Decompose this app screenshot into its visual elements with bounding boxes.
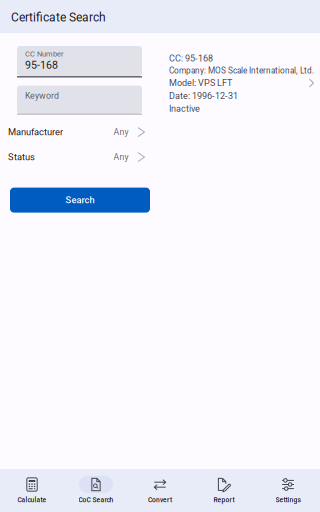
staticText: Report	[213, 496, 234, 504]
staticText: CC: 95-168	[169, 53, 213, 64]
staticText: 95-168	[25, 59, 58, 71]
button[interactable]: Manufacturer	[0, 120, 148, 145]
button[interactable]: Settings	[256, 469, 320, 512]
staticText: Keyword	[25, 91, 59, 101]
button[interactable]: CC: 95-168	[160, 33, 320, 153]
button[interactable]: Report	[192, 469, 256, 512]
staticText: Search	[65, 195, 94, 205]
staticText: Manufacturer	[8, 127, 63, 137]
staticText: Calculate	[17, 496, 46, 504]
staticText: Inactive	[169, 103, 200, 114]
staticText: Convert	[148, 496, 172, 504]
button[interactable]: CoC Search	[64, 469, 128, 512]
button[interactable]: Search	[10, 188, 150, 213]
staticText: Status	[8, 152, 35, 162]
staticText: Any	[113, 152, 128, 162]
button[interactable]: Convert	[128, 469, 192, 512]
button[interactable]: Status	[0, 145, 148, 170]
staticText: Any	[113, 127, 128, 137]
button[interactable]: Calculate	[0, 469, 64, 512]
staticText: Model: VPS LFT	[169, 78, 232, 88]
staticText: CC Number	[25, 49, 64, 58]
staticText: CoC Search	[78, 496, 113, 504]
staticText: Date: 1996-12-31	[169, 90, 238, 101]
staticText: Certificate Search	[11, 10, 106, 25]
staticText: Settings	[275, 496, 300, 504]
staticText: Company: MOS Scale International, Ltd.	[169, 66, 314, 75]
